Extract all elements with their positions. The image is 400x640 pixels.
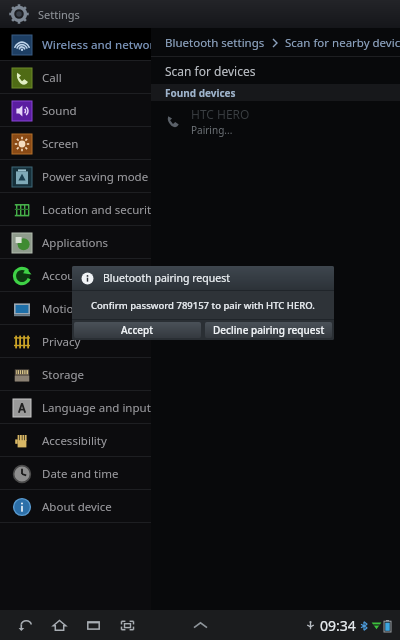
- button[interactable]: Accept: [74, 322, 201, 338]
- staticText: Date and time: [42, 466, 119, 482]
- staticText: Settings: [38, 7, 80, 22]
- staticText: Pairing...: [191, 123, 233, 137]
- button[interactable]: Phone device: [151, 101, 400, 141]
- staticText: Confirm password 789157 to pair with HTC…: [91, 299, 315, 312]
- button[interactable]: Motion: [0, 292, 151, 325]
- staticText: Accessibility: [42, 433, 107, 449]
- button[interactable]: About device: [0, 490, 151, 523]
- staticText: Power saving mode: [42, 169, 149, 185]
- button[interactable]: Wireless and networks: [0, 28, 151, 61]
- button[interactable]: Screen: [0, 127, 151, 160]
- button[interactable]: Privacy: [0, 325, 151, 358]
- button[interactable]: Applications: [0, 226, 151, 259]
- staticText: Sound: [42, 103, 77, 119]
- button[interactable]: Storage: [0, 358, 151, 391]
- staticText: Screen: [42, 136, 79, 152]
- staticText: Scan for devices: [165, 63, 256, 79]
- button[interactable]: Accessibility: [0, 424, 151, 457]
- staticText: Accept: [121, 323, 154, 337]
- button[interactable]: Decline pairing request: [205, 322, 332, 338]
- staticText: Scan for nearby devices: [285, 35, 400, 51]
- button[interactable]: Bluetooth settings: [165, 35, 265, 51]
- button[interactable]: Recent apps: [80, 612, 106, 638]
- button[interactable]: Back: [12, 612, 38, 638]
- staticText: Language and input: [42, 400, 151, 416]
- other: Phone device: [165, 113, 181, 129]
- button[interactable]: Accounts and sync: [0, 259, 151, 292]
- staticText: Call: [42, 70, 62, 86]
- button[interactable]: Home: [46, 612, 72, 638]
- staticText: Found devices: [165, 86, 236, 100]
- button[interactable]: Language and input: [0, 391, 151, 424]
- staticText: Accounts and sync: [42, 268, 142, 284]
- button[interactable]: Location and security: [0, 193, 151, 226]
- button[interactable]: Expand: [187, 612, 213, 638]
- button[interactable]: Power saving mode: [0, 160, 151, 193]
- staticText: Privacy: [42, 334, 81, 350]
- button[interactable]: Screenshot: [114, 612, 140, 638]
- staticText: Motion: [42, 301, 81, 317]
- button[interactable]: Sound: [0, 94, 151, 127]
- button[interactable]: Date and time: [0, 457, 151, 490]
- staticText: Wireless and networks: [42, 37, 151, 53]
- staticText: Bluetooth pairing request: [103, 271, 230, 285]
- staticText: Storage: [42, 367, 84, 383]
- staticText: Applications: [42, 235, 109, 251]
- other: Settings: [10, 5, 28, 23]
- staticText: HTC HERO: [191, 106, 250, 122]
- staticText: Location and security: [42, 202, 151, 218]
- button[interactable]: Call: [0, 61, 151, 94]
- staticText: Decline pairing request: [213, 323, 325, 337]
- staticText: 09:34: [320, 616, 356, 635]
- staticText: About device: [42, 499, 112, 515]
